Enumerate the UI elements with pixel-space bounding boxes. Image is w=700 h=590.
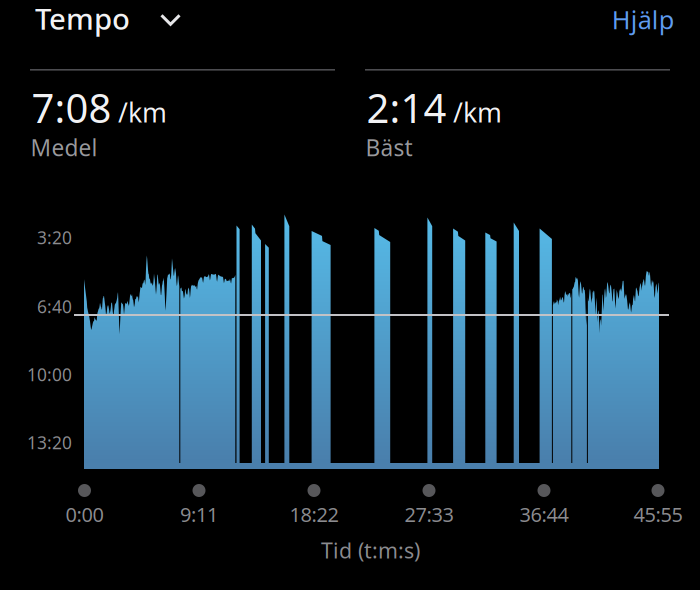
staticText: Tid (t:m:s): [321, 536, 420, 564]
staticText: Bäst: [365, 132, 412, 163]
staticText: 0:00: [65, 501, 103, 528]
staticText: Tempo: [35, 0, 130, 38]
staticText: Medel: [30, 132, 97, 163]
staticText: 3:20: [37, 226, 72, 249]
staticText: 45:55: [633, 501, 682, 528]
button[interactable]: Tempo: [35, 0, 190, 41]
staticText: 7:08: [31, 81, 111, 134]
staticText: /km: [453, 94, 502, 130]
staticText: 9:11: [180, 501, 218, 528]
staticText: 36:44: [519, 501, 568, 528]
staticText: Hjälp: [612, 3, 675, 36]
staticText: 13:20: [27, 431, 72, 454]
staticText: 27:33: [404, 501, 453, 528]
staticText: 10:00: [27, 363, 72, 386]
staticText: /km: [118, 94, 167, 130]
staticText: 6:40: [37, 295, 72, 318]
button[interactable]: Hjälp: [612, 3, 688, 43]
staticText: 2:14: [366, 81, 446, 134]
staticText: 18:22: [289, 501, 338, 528]
